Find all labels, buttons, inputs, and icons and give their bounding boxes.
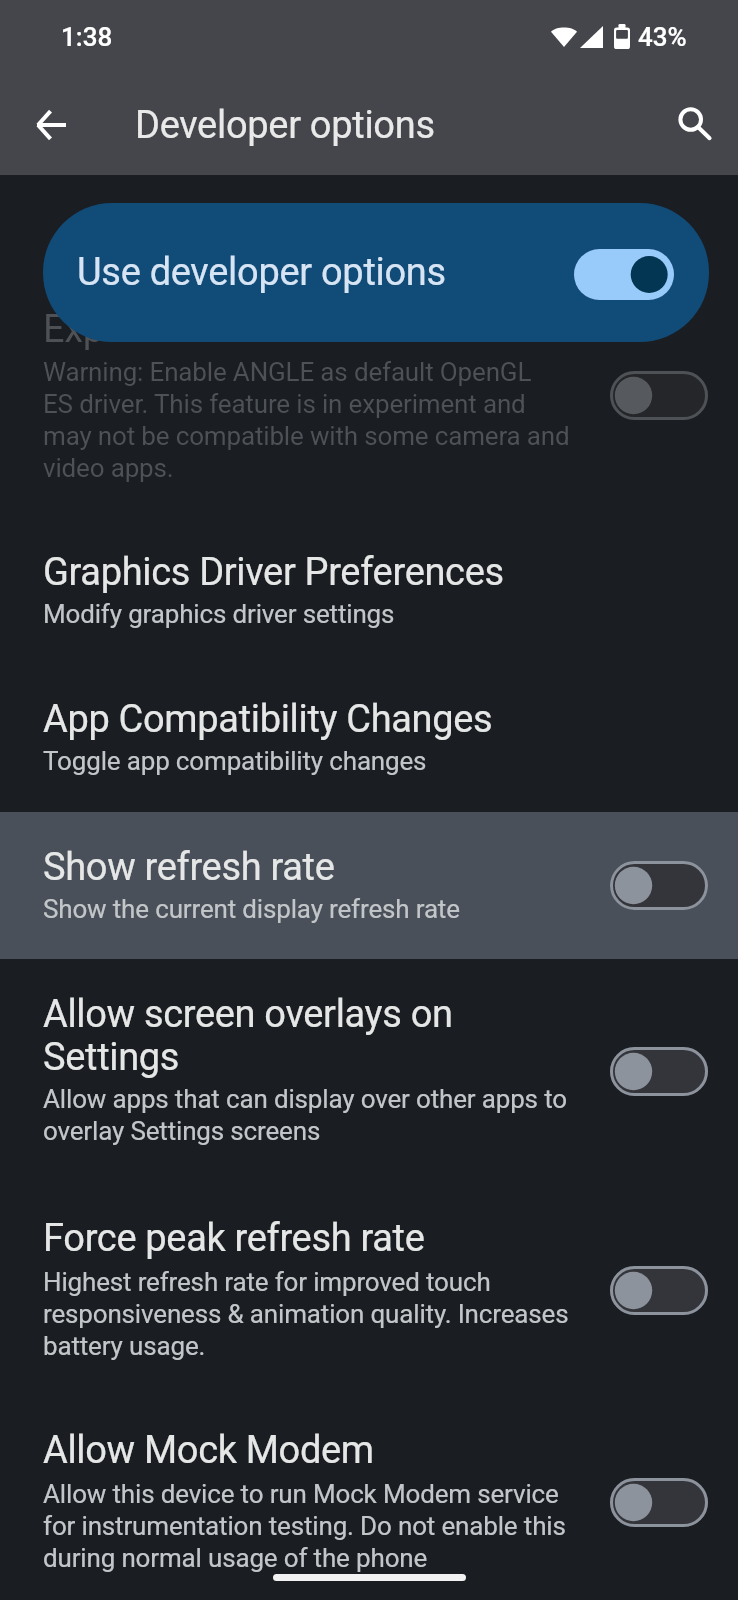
staticText: Allow screen overlays on Settings <box>43 993 623 1079</box>
staticText: Toggle app compatibility changes <box>43 745 623 777</box>
button[interactable]: Experimental Enable ANGLE toggle <box>610 371 708 420</box>
staticText: Developer options <box>135 103 435 147</box>
staticText: Experimental: Enable ANGLE <box>43 308 623 351</box>
staticText: App Compatibility Changes <box>43 698 623 741</box>
button[interactable]: Graphics Driver Preferences <box>0 517 738 664</box>
staticText: Allow Mock Modem <box>43 1429 623 1472</box>
button[interactable]: Use developer options <box>43 203 709 342</box>
button[interactable]: Back <box>19 94 81 156</box>
staticText: Highest refresh rate for improved touch … <box>43 1266 623 1362</box>
button[interactable]: Allow screen overlays toggle <box>610 1047 708 1096</box>
staticText: Allow this device to run Mock Modem serv… <box>43 1478 623 1574</box>
button[interactable]: Force peak refresh rate <box>0 1183 738 1395</box>
staticText: Use developer options <box>77 251 537 294</box>
button[interactable]: Show refresh rate toggle <box>610 861 708 910</box>
staticText: Modify graphics driver settings <box>43 598 623 630</box>
button[interactable]: Experimental: Enable ANGLE <box>0 274 738 517</box>
staticText: Warning: Enable ANGLE as default OpenGL … <box>43 356 623 484</box>
button[interactable]: Allow Mock Modem toggle <box>610 1478 708 1527</box>
button[interactable]: Show refresh rate <box>0 812 738 959</box>
button[interactable]: Use developer options toggle <box>574 249 674 300</box>
staticText: Show refresh rate <box>43 846 623 889</box>
staticText: 1:38 <box>61 21 113 53</box>
button[interactable]: Allow Mock Modem <box>0 1395 738 1600</box>
staticText: 43% <box>638 21 687 53</box>
staticText: Allow apps that can display over other a… <box>43 1083 623 1147</box>
button[interactable]: Search <box>646 86 708 148</box>
button[interactable]: Force peak refresh rate toggle <box>610 1266 708 1315</box>
button[interactable]: App Compatibility Changes <box>0 664 738 811</box>
staticText: Graphics Driver Preferences <box>43 551 623 594</box>
staticText: Force peak refresh rate <box>43 1217 623 1260</box>
staticText: Show the current display refresh rate <box>43 893 623 925</box>
button[interactable]: Allow screen overlays on Settings <box>0 959 738 1180</box>
